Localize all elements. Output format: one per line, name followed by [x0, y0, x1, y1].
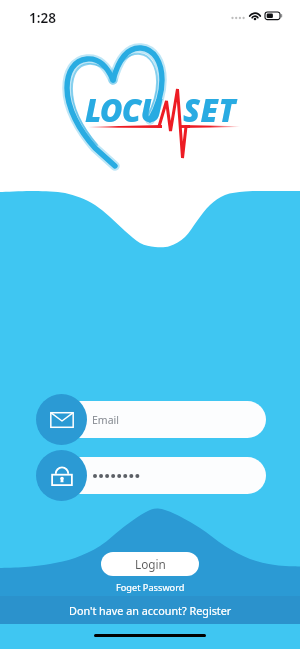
- staticText: LOCU: [85, 89, 162, 131]
- staticText: Email: [92, 413, 119, 427]
- staticText: Foget Password: [116, 581, 185, 594]
- staticText: 1:28: [29, 9, 56, 27]
- button[interactable]: Email: [58, 401, 266, 438]
- button[interactable]: Don't have an account? Register: [0, 596, 300, 624]
- button[interactable]: Login: [101, 552, 199, 576]
- staticText: Login: [135, 556, 166, 572]
- button[interactable]: Email: [36, 394, 87, 445]
- button[interactable]: Foget Password: [110, 580, 191, 595]
- button[interactable]: [58, 457, 266, 494]
- button[interactable]: Password: [36, 450, 87, 501]
- staticText: Don't have an account? Register: [69, 603, 232, 618]
- staticText: SET: [183, 89, 237, 131]
